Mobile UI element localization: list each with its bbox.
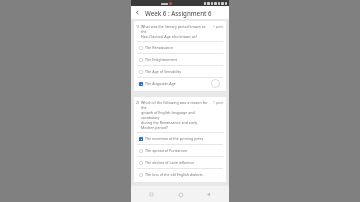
staticText: The invention of the printing press [145, 136, 204, 141]
staticText: The Renaissance [145, 45, 174, 50]
staticText: The spread of Puritanism [145, 148, 188, 153]
staticText: The Augustan Age [145, 81, 176, 86]
staticText: 1 point [213, 25, 224, 29]
staticText: Week 6 : Assignment 6 [145, 9, 212, 17]
staticText: The Enlightenment [145, 57, 178, 62]
staticText: 1 point [213, 101, 224, 105]
button[interactable]: The invention of the printing press [134, 133, 226, 144]
staticText: What was the literary period known as th… [141, 24, 211, 39]
staticText: The loss of the old English dialects [145, 172, 203, 177]
staticText: The decline of Latin influence [145, 160, 195, 165]
button[interactable]: Home [176, 190, 185, 199]
button[interactable]: Recent apps [147, 190, 156, 199]
staticText: 1) [136, 24, 140, 29]
button[interactable]: The Augustan Age [134, 78, 226, 89]
staticText: Which of the following was a reason for … [141, 100, 211, 130]
button[interactable]: Back [204, 190, 213, 199]
staticText: The Age of Sensibility [145, 69, 181, 74]
button[interactable]: Back [133, 8, 142, 17]
button[interactable]: The Renaissance [134, 42, 226, 53]
button[interactable]: The Age of Sensibility [134, 66, 226, 77]
button[interactable]: The loss of the old English dialects [134, 169, 226, 180]
button[interactable]: The Enlightenment [134, 54, 226, 65]
button[interactable]: The decline of Latin influence [134, 157, 226, 168]
staticText: 2) [136, 100, 140, 105]
button[interactable]: The spread of Puritanism [134, 145, 226, 156]
